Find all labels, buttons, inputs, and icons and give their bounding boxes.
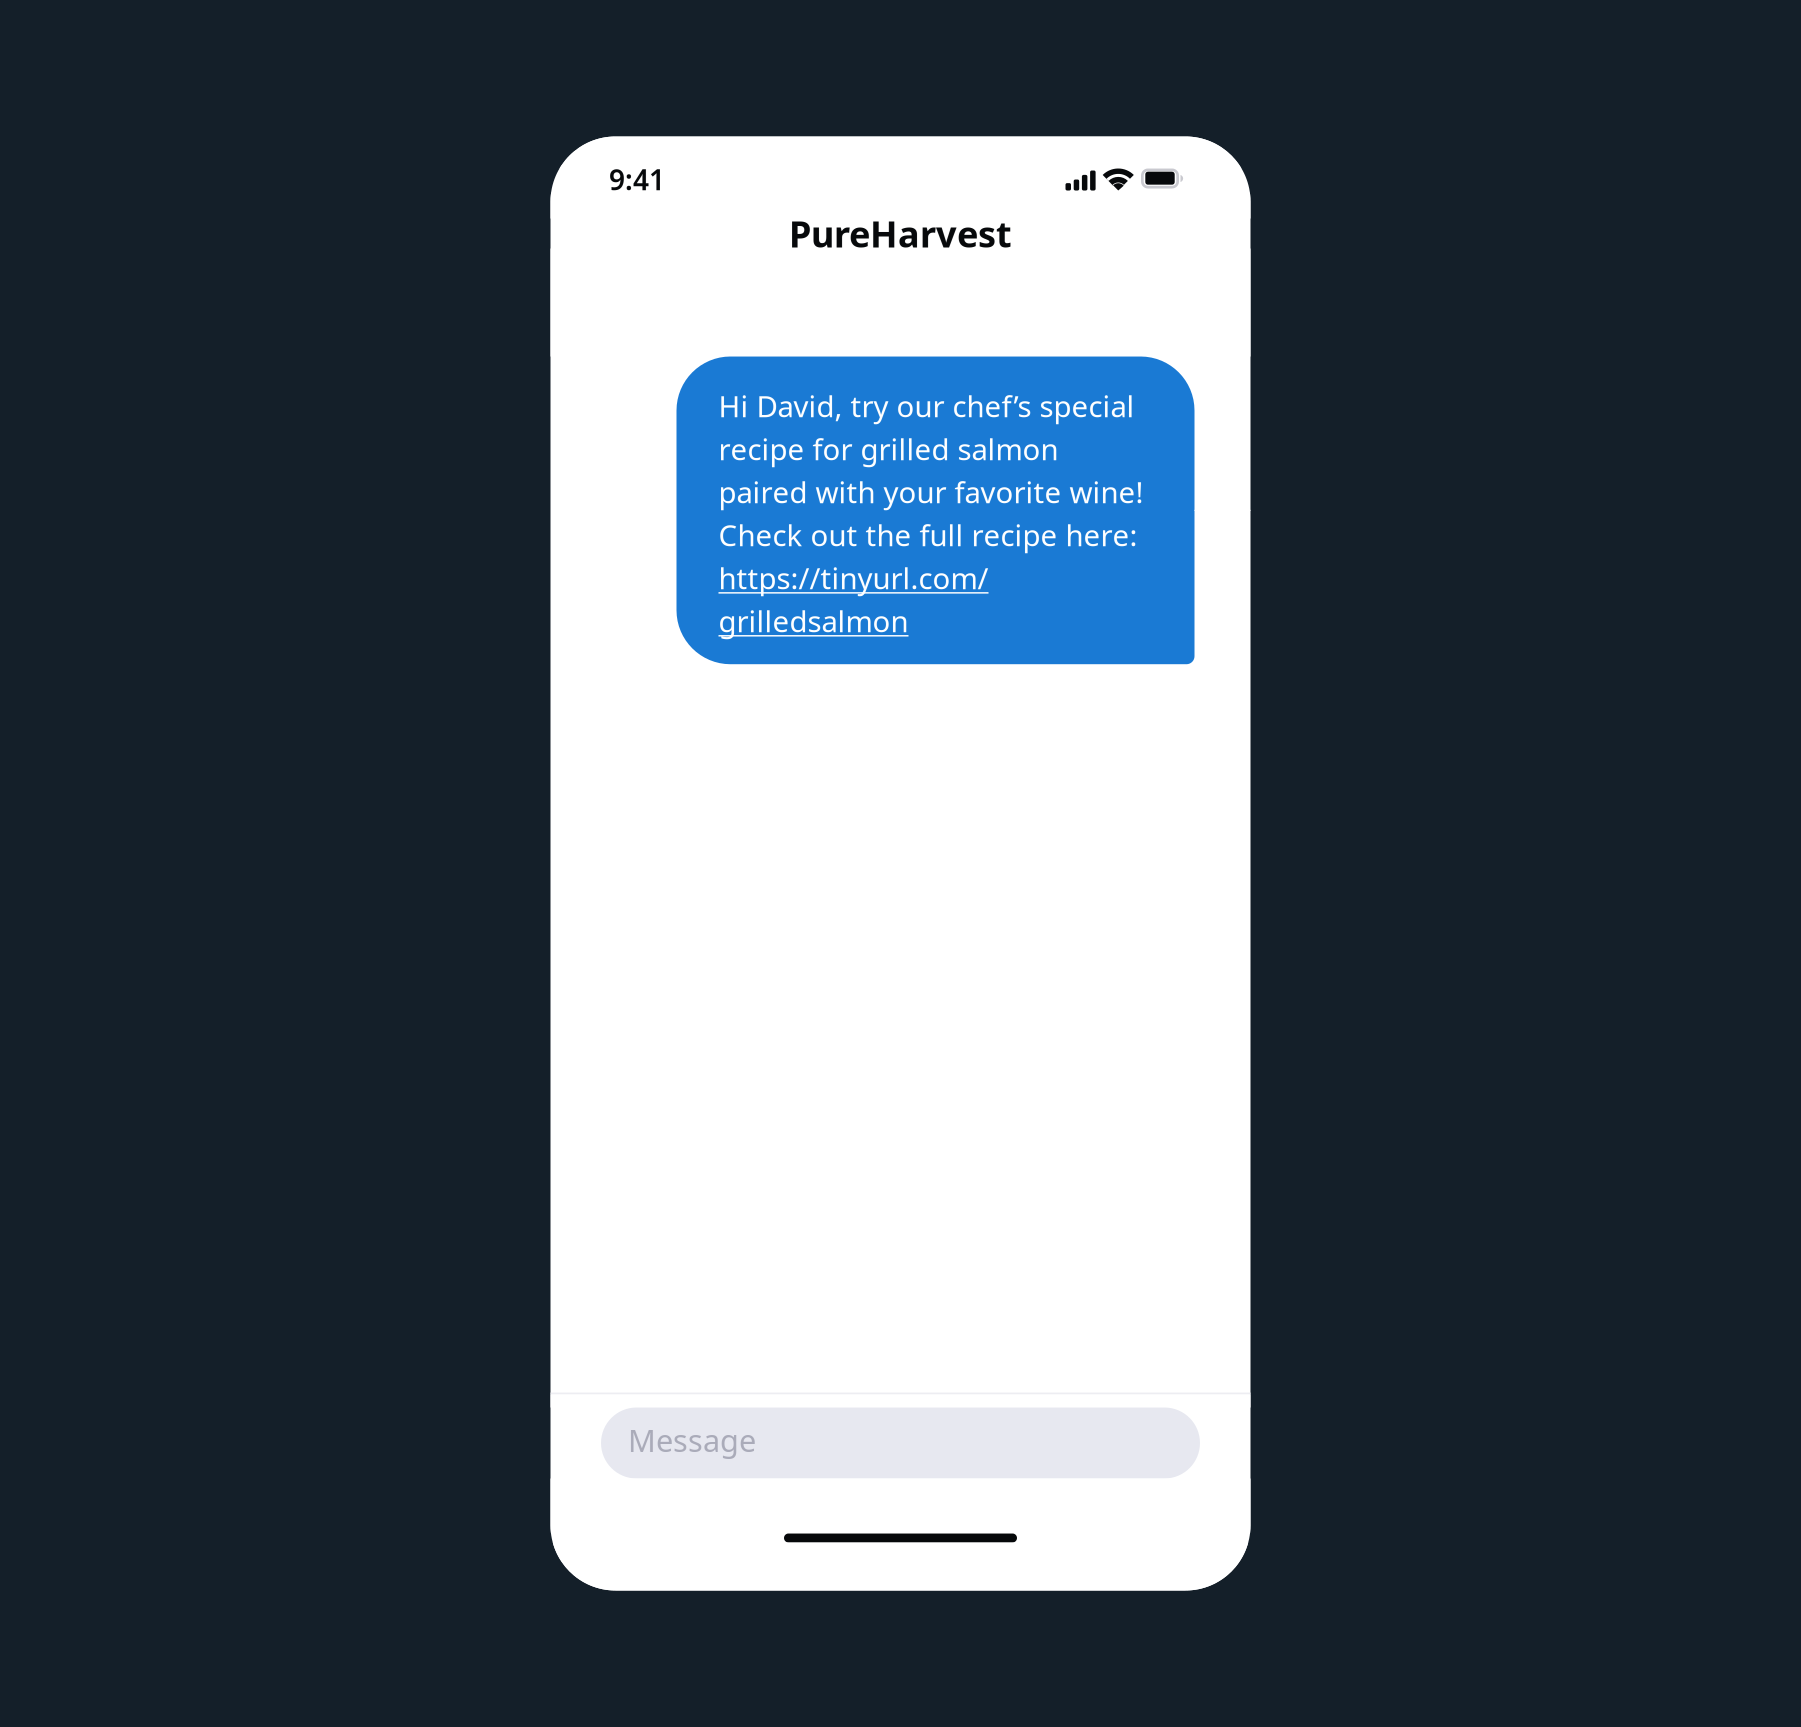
staticText: Hi David, try our chef’s special recipe …	[718, 386, 1143, 640]
staticText: Message	[628, 1420, 756, 1460]
button[interactable]: Hi David, try our chef’s special recipe …	[676, 356, 1194, 664]
staticText: 9:41	[609, 161, 665, 198]
staticText: PureHarvest	[789, 210, 1012, 257]
button[interactable]: Message	[601, 1407, 1200, 1478]
